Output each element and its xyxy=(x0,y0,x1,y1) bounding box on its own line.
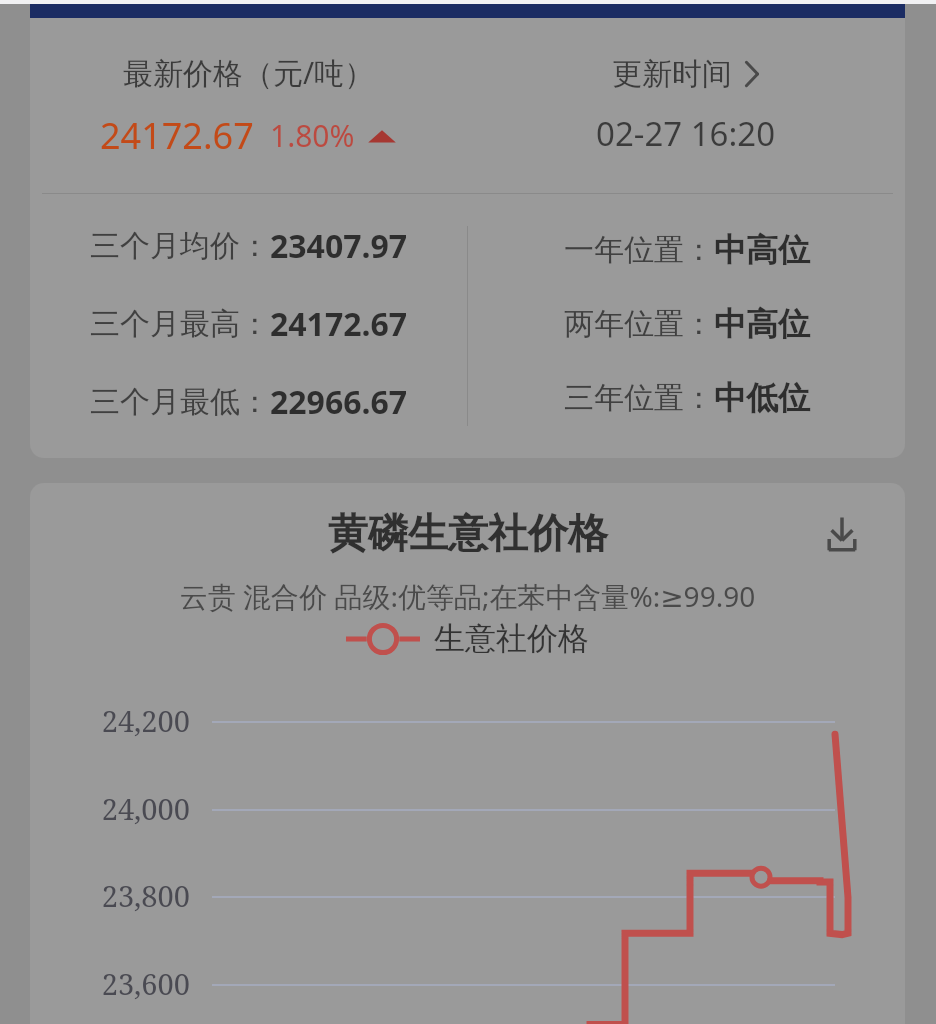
staticText: 云贵 混合价 品级:优等品;在苯中含量%:≥99.90 xyxy=(30,577,905,615)
staticText: 24,200 xyxy=(88,701,190,740)
staticText: 24172.67 xyxy=(100,111,254,160)
button[interactable]: 更新时间 xyxy=(467,18,905,193)
staticText: 中低位 xyxy=(714,378,810,418)
staticText: 1.80% xyxy=(270,115,355,156)
staticText: 23407.97 xyxy=(270,224,408,268)
staticText: 黄磷生意社价格 xyxy=(328,508,608,558)
staticText: 23,600 xyxy=(88,964,190,1003)
staticText: 02-27 16:20 xyxy=(596,111,776,156)
staticText: 最新价格（元/吨） xyxy=(123,52,375,93)
button[interactable]: Download chart xyxy=(817,510,867,560)
staticText: 三个月均价： xyxy=(90,227,270,265)
staticText: 22966.67 xyxy=(270,380,408,424)
staticText: 一年位置： xyxy=(564,231,714,269)
staticText: 中高位 xyxy=(714,304,810,344)
staticText: 更新时间 xyxy=(612,55,732,93)
staticText: 两年位置： xyxy=(564,305,714,343)
staticText: 24,000 xyxy=(88,789,190,828)
staticText: 三个月最高： xyxy=(90,305,270,343)
staticText: 中高位 xyxy=(714,230,810,270)
staticText: 三个月最低： xyxy=(90,383,270,421)
button[interactable]: 最新价格（元/吨） xyxy=(30,18,467,193)
staticText: 23,800 xyxy=(88,876,190,915)
staticText: 24172.67 xyxy=(270,302,408,346)
staticText: 三年位置： xyxy=(564,379,714,417)
staticText: 生意社价格 xyxy=(434,619,589,658)
